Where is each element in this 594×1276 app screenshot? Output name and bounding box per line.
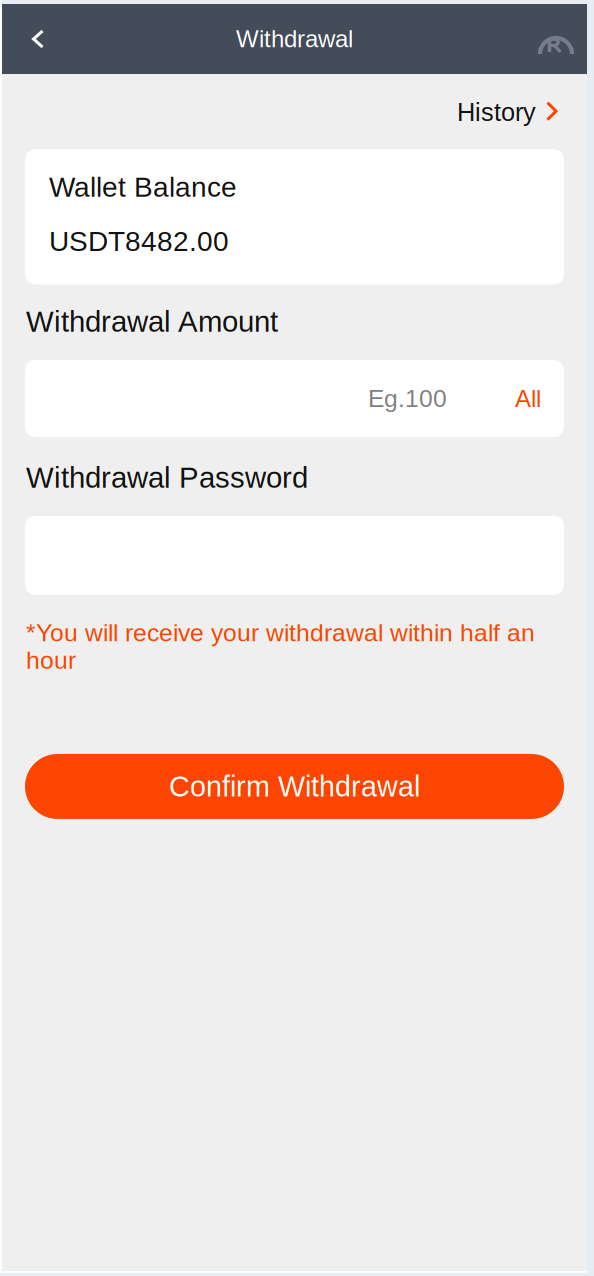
staticText: Wallet Balance [49, 171, 237, 203]
staticText: All [515, 385, 541, 412]
button[interactable]: All [447, 363, 564, 434]
staticText: Withdrawal Password [26, 461, 308, 494]
button[interactable]: Confirm Withdrawal [25, 754, 564, 819]
staticText: Confirm Withdrawal [169, 770, 420, 802]
staticText: Withdrawal [236, 26, 353, 52]
staticText: USDT8482.00 [49, 226, 229, 257]
staticText: Eg.100 [368, 385, 447, 412]
staticText: History [457, 98, 536, 126]
staticText: *You will receive your withdrawal within… [26, 619, 535, 674]
button[interactable]: History [443, 92, 558, 132]
button[interactable]: Back [2, 4, 68, 74]
staticText: Withdrawal Amount [26, 305, 278, 338]
button[interactable]: Brand logo [538, 4, 587, 74]
